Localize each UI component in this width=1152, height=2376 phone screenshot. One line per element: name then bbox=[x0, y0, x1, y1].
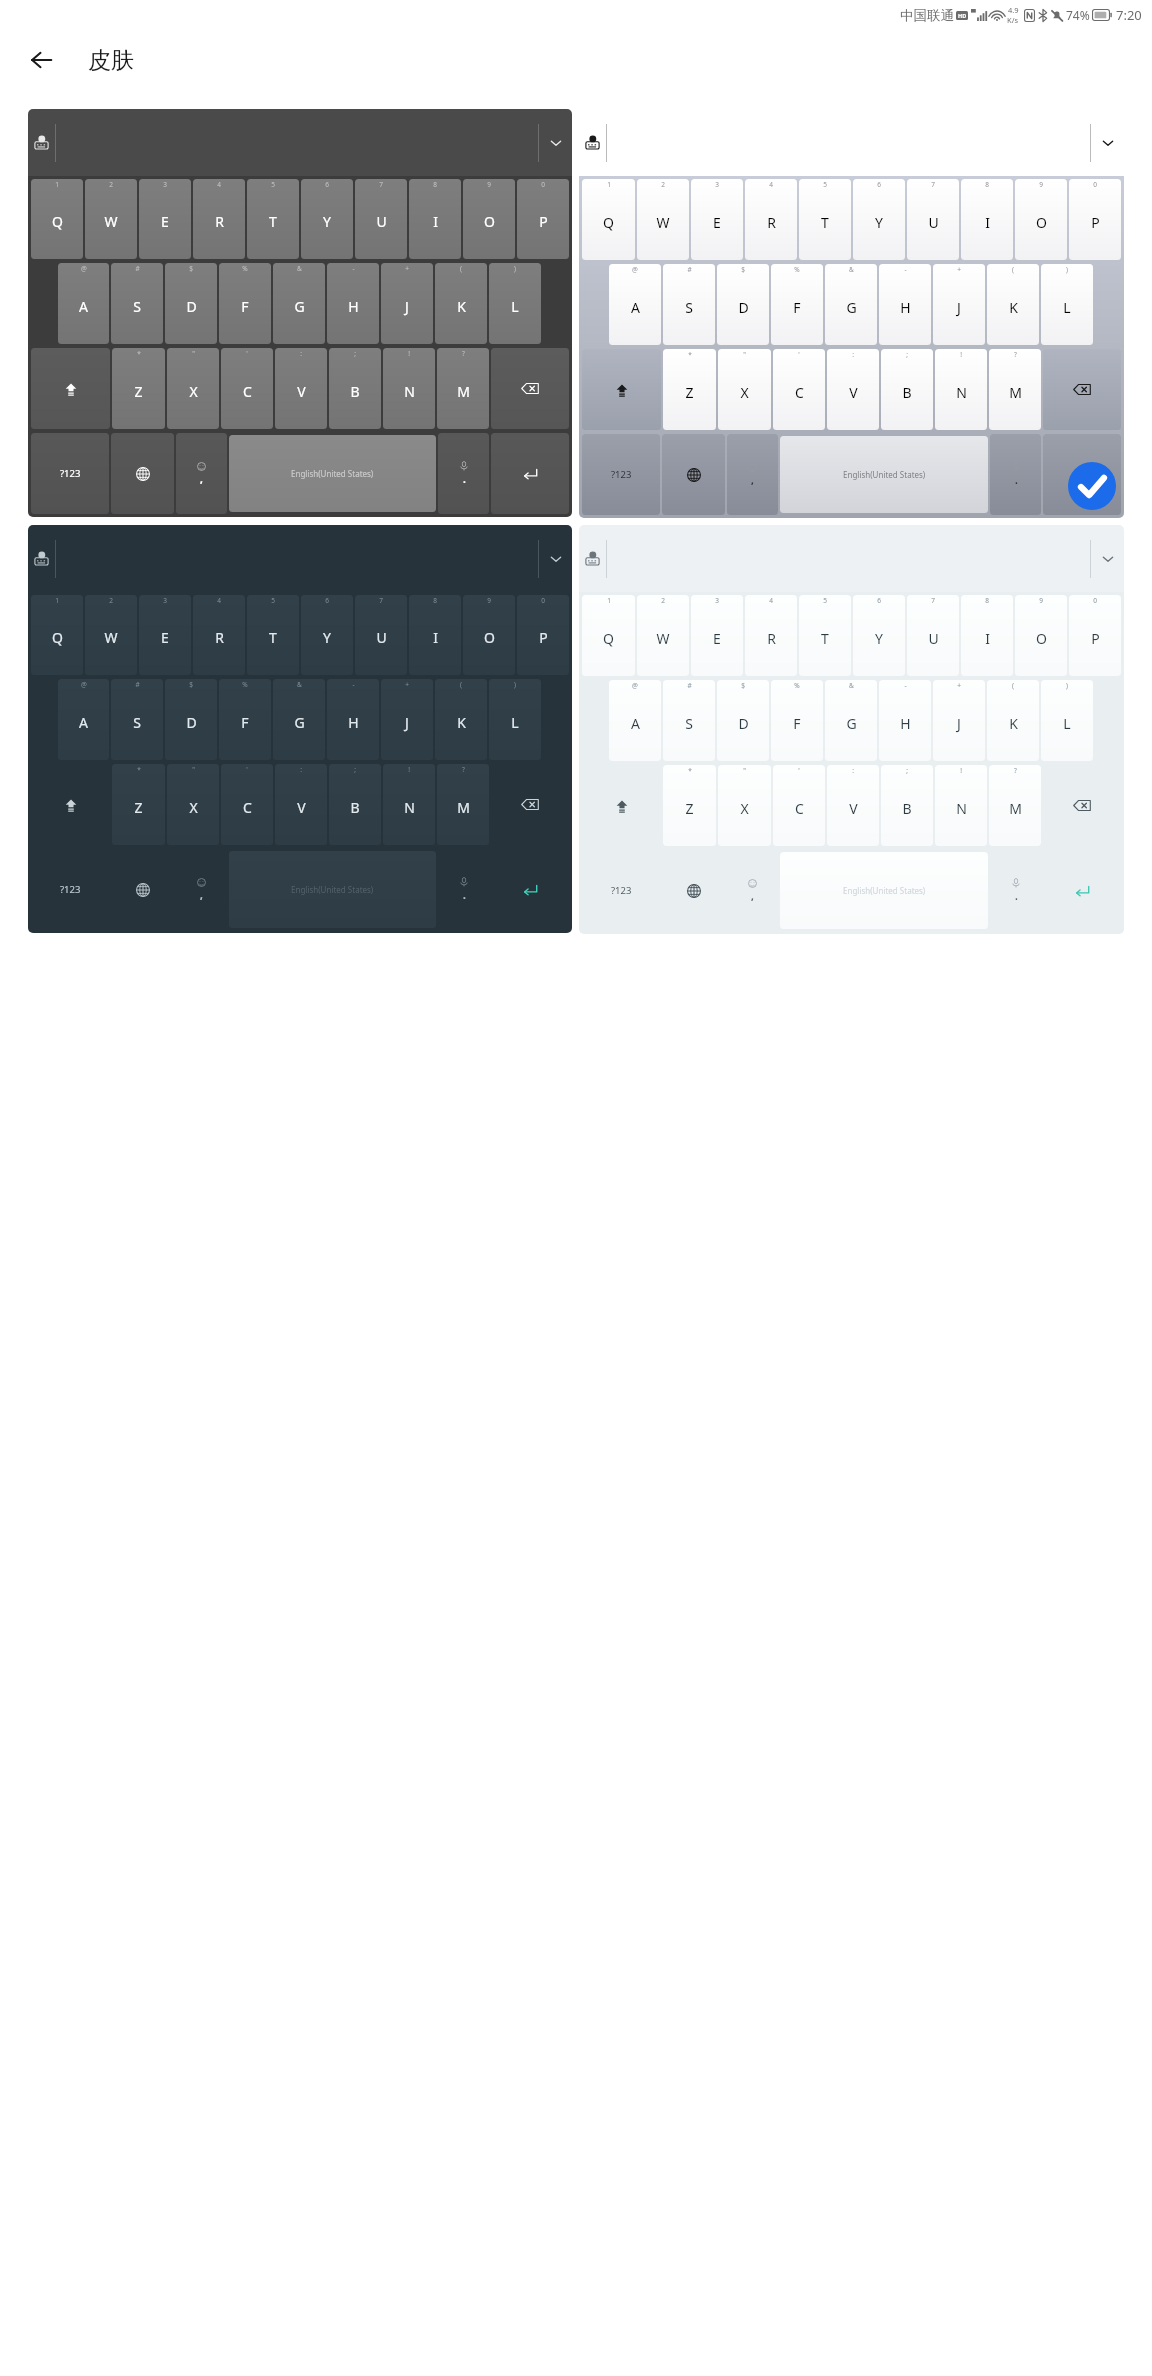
button[interactable]: 5 bbox=[247, 595, 299, 675]
button[interactable]: & bbox=[273, 679, 325, 760]
button[interactable]: ? bbox=[437, 348, 489, 429]
button[interactable]: @ bbox=[609, 680, 661, 761]
button[interactable]: % bbox=[219, 263, 271, 344]
button[interactable]: 7 bbox=[355, 595, 407, 675]
button[interactable]: + bbox=[933, 264, 985, 345]
button[interactable]: ?123 bbox=[582, 434, 660, 515]
button[interactable]: * bbox=[112, 348, 165, 429]
button[interactable]: 1 bbox=[579, 109, 1124, 518]
button[interactable]: 0 bbox=[517, 179, 569, 259]
button[interactable]: Shift bbox=[31, 348, 110, 429]
button[interactable]: Language bbox=[662, 434, 725, 515]
button[interactable]: ( bbox=[987, 264, 1039, 345]
button[interactable]: 9 bbox=[463, 595, 515, 675]
button[interactable]: 5 bbox=[799, 595, 851, 676]
button[interactable]: 7 bbox=[355, 179, 407, 259]
button[interactable]: & bbox=[825, 264, 877, 345]
button[interactable]: Language bbox=[111, 433, 174, 514]
button[interactable]: Back bbox=[21, 40, 61, 80]
button[interactable]: Shift bbox=[582, 765, 661, 846]
button[interactable]: Enter bbox=[491, 849, 569, 930]
button[interactable]: ? bbox=[989, 349, 1041, 430]
button[interactable]: * bbox=[112, 764, 165, 845]
button[interactable]: 4 bbox=[193, 179, 245, 259]
button[interactable]: # bbox=[663, 680, 715, 761]
button[interactable]: Language bbox=[111, 849, 174, 930]
button[interactable]: " bbox=[167, 348, 219, 429]
button[interactable]: 1 bbox=[31, 595, 83, 675]
button[interactable]: 0 bbox=[517, 595, 569, 675]
button[interactable]: $ bbox=[165, 679, 217, 760]
button[interactable]: 2 bbox=[637, 179, 689, 260]
button[interactable]: : bbox=[827, 349, 879, 430]
button[interactable]: Emoji and comma bbox=[727, 850, 778, 931]
button[interactable]: % bbox=[771, 264, 823, 345]
button[interactable]: 1 bbox=[579, 525, 1124, 934]
button[interactable]: ; bbox=[881, 765, 933, 846]
button[interactable]: * bbox=[663, 349, 716, 430]
button[interactable]: 8 bbox=[409, 595, 461, 675]
button[interactable]: 8 bbox=[409, 179, 461, 259]
button[interactable]: 4 bbox=[745, 595, 797, 676]
button[interactable]: 2 bbox=[637, 595, 689, 676]
button[interactable]: % bbox=[219, 679, 271, 760]
button[interactable]: Enter bbox=[491, 433, 569, 514]
button[interactable]: 8 bbox=[961, 595, 1013, 676]
button[interactable]: @ bbox=[58, 679, 109, 760]
button[interactable]: English(United States) bbox=[780, 852, 988, 929]
button[interactable]: ? bbox=[437, 764, 489, 845]
button[interactable]: 1 bbox=[582, 179, 635, 260]
button[interactable]: 0 bbox=[1069, 595, 1121, 676]
button[interactable]: 9 bbox=[1015, 179, 1067, 260]
button[interactable]: 9 bbox=[1015, 595, 1067, 676]
button[interactable]: ( bbox=[987, 680, 1039, 761]
button[interactable]: 4 bbox=[193, 595, 245, 675]
button[interactable]: Backspace bbox=[1043, 765, 1121, 846]
button[interactable]: 5 bbox=[799, 179, 851, 260]
button[interactable]: % bbox=[771, 680, 823, 761]
button[interactable]: ' bbox=[773, 349, 825, 430]
button[interactable]: ( bbox=[435, 679, 487, 760]
button[interactable]: 6 bbox=[301, 595, 353, 675]
button[interactable]: ' bbox=[773, 765, 825, 846]
button[interactable]: ? bbox=[989, 765, 1041, 846]
button[interactable]: Enter bbox=[1043, 434, 1121, 515]
button[interactable]: ?123 bbox=[582, 850, 660, 931]
button[interactable]: Enter bbox=[1043, 850, 1121, 931]
button[interactable]: English(United States) bbox=[229, 435, 436, 512]
button[interactable]: $ bbox=[165, 263, 217, 344]
button[interactable]: # bbox=[111, 679, 163, 760]
button[interactable]: : bbox=[827, 765, 879, 846]
button[interactable]: @ bbox=[609, 264, 661, 345]
button[interactable]: " bbox=[167, 764, 219, 845]
button[interactable]: ' bbox=[221, 764, 273, 845]
button[interactable]: ; bbox=[881, 349, 933, 430]
button[interactable]: Emoji and comma bbox=[176, 849, 227, 930]
button[interactable]: * bbox=[663, 765, 716, 846]
button[interactable]: ) bbox=[489, 679, 541, 760]
button[interactable]: Voice input and period bbox=[990, 850, 1041, 931]
button[interactable]: - bbox=[879, 264, 931, 345]
button[interactable]: Shift bbox=[582, 349, 661, 430]
button[interactable]: " bbox=[718, 765, 771, 846]
button[interactable]: 2 bbox=[85, 179, 137, 259]
button[interactable]: @ bbox=[58, 263, 109, 344]
button[interactable]: 0 bbox=[1069, 179, 1121, 260]
button[interactable]: 5 bbox=[247, 179, 299, 259]
button[interactable]: 1 bbox=[31, 179, 83, 259]
button[interactable]: 3 bbox=[139, 595, 191, 675]
button[interactable]: + bbox=[933, 680, 985, 761]
button[interactable]: # bbox=[111, 263, 163, 344]
button[interactable]: Shift bbox=[31, 764, 110, 845]
button[interactable]: Voice input and period bbox=[990, 434, 1041, 515]
button[interactable]: ; bbox=[329, 764, 381, 845]
button[interactable]: 4 bbox=[745, 179, 797, 260]
button[interactable]: & bbox=[273, 263, 325, 344]
button[interactable]: Voice input and period bbox=[438, 433, 489, 514]
button[interactable]: & bbox=[825, 680, 877, 761]
button[interactable]: ( bbox=[435, 263, 487, 344]
button[interactable]: 6 bbox=[301, 179, 353, 259]
button[interactable]: ! bbox=[383, 764, 435, 845]
button[interactable]: English(United States) bbox=[229, 851, 436, 928]
button[interactable]: + bbox=[381, 679, 433, 760]
